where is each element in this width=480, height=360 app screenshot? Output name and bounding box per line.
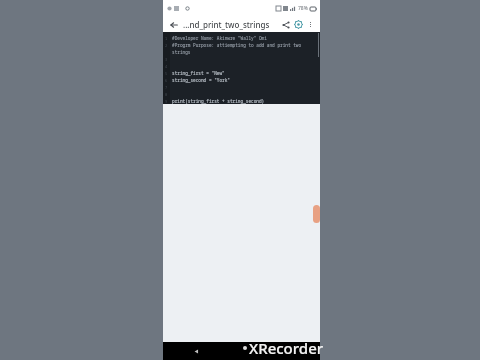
staticText: 5 (165, 71, 168, 76)
staticText: 78% (298, 5, 308, 12)
staticText: #Developer Name: Akinwre "Wally" Omi (172, 35, 267, 41)
button[interactable]: Back (193, 348, 200, 355)
staticText: string_second = "York" (172, 77, 230, 83)
staticText: 1 (165, 36, 168, 41)
staticText: ...nd_print_two_strings (183, 19, 279, 30)
button[interactable]: More options (305, 19, 316, 30)
staticText: string_first = "New" (172, 70, 225, 76)
staticText: 7 (165, 85, 168, 90)
staticText: 6 (165, 78, 168, 83)
staticText: print(string_first + string_second) (172, 98, 265, 104)
staticText: 8 (165, 92, 168, 97)
staticText: 9 (165, 99, 168, 104)
staticText: #Progrm Purpose: attiempting to add and … (172, 42, 302, 48)
staticText: 3 (165, 57, 168, 62)
button[interactable]: Screen recorder (313, 205, 320, 223)
button[interactable]: Share (279, 18, 292, 31)
button[interactable]: Back (167, 18, 180, 31)
button[interactable]: Settings (292, 18, 305, 31)
staticText: XRecorder (249, 338, 324, 358)
staticText: 2 (165, 43, 168, 48)
staticText: 4 (165, 64, 168, 69)
staticText: strings (172, 49, 191, 55)
